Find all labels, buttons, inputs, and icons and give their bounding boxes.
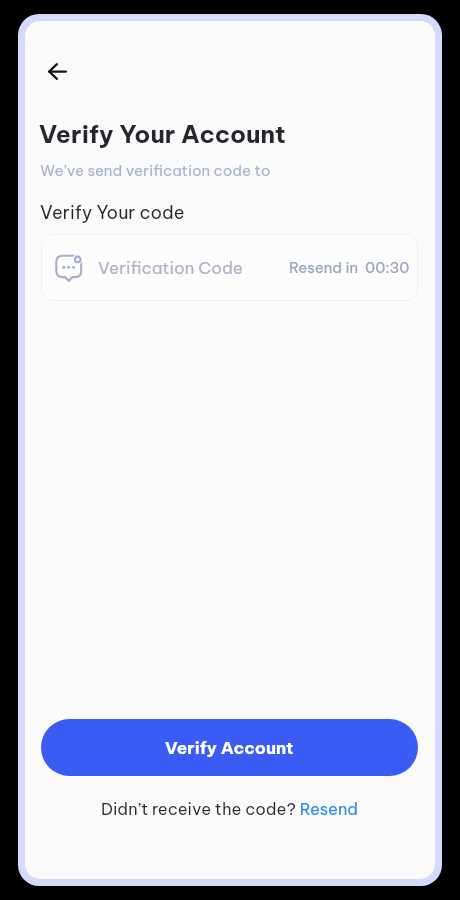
staticText: Verification Code — [98, 257, 243, 278]
staticText: Resend in 00:30 — [289, 258, 410, 277]
staticText: Verify Account — [165, 737, 294, 759]
button[interactable]: Verification Code — [41, 234, 418, 301]
button[interactable]: Verify Account — [41, 719, 418, 776]
staticText: Verify Your Account — [39, 118, 286, 149]
button[interactable]: Back — [35, 49, 79, 93]
staticText: We’ve send verification code to — [40, 161, 271, 180]
button[interactable]: Didn’t receive the code? Resend — [101, 798, 359, 819]
staticText: Verify Your code — [40, 201, 185, 224]
